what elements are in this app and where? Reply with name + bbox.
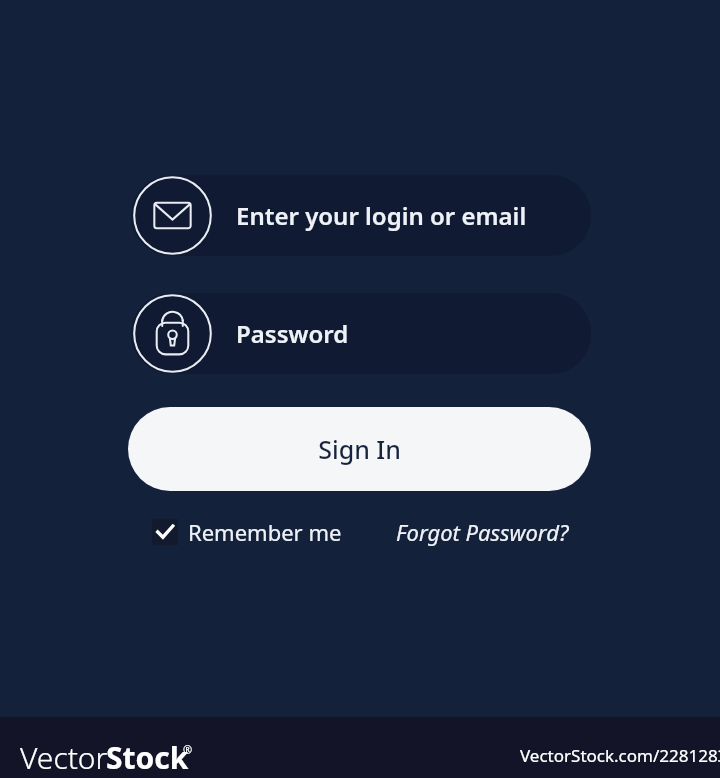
- staticText: Stock: [106, 737, 189, 778]
- staticText: Remember me: [188, 517, 342, 547]
- staticText: Enter your login or email: [236, 199, 527, 232]
- button[interactable]: Remember me: [148, 514, 334, 550]
- staticText: Password: [236, 317, 349, 350]
- staticText: Vector: [20, 737, 108, 778]
- button[interactable]: Email: [131, 175, 591, 256]
- staticText: Forgot Password?: [396, 517, 569, 547]
- staticText: ®: [183, 742, 193, 757]
- other: Password: [133, 294, 212, 373]
- button[interactable]: Forgot Password?: [396, 514, 569, 550]
- other: Email: [133, 176, 212, 255]
- staticText: Sign In: [318, 432, 401, 466]
- button[interactable]: Password: [131, 293, 591, 374]
- button[interactable]: Sign In: [128, 407, 591, 491]
- staticText: VectorStock.com/22812831: [520, 744, 720, 767]
